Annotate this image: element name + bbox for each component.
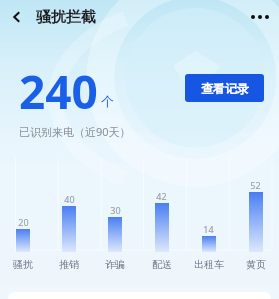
staticText: 已识别来电（近90天） [19, 124, 131, 139]
button[interactable]: 52 [232, 158, 279, 273]
staticText: 个 [101, 93, 114, 109]
staticText: 骚扰拦截 [36, 8, 96, 27]
button[interactable]: 20 [0, 158, 46, 273]
button[interactable]: 42 [138, 158, 185, 273]
staticText: 出租车 [194, 258, 224, 271]
staticText: 20 [18, 216, 29, 228]
button[interactable]: 查看记录 [185, 74, 264, 102]
staticText: 推销 [59, 258, 79, 271]
staticText: 14 [203, 223, 214, 235]
staticText: 配送 [152, 258, 172, 271]
button[interactable]: Back [0, 0, 34, 34]
staticText: 52 [250, 179, 261, 191]
staticText: 诈骗 [105, 258, 125, 271]
button[interactable]: 14 [185, 158, 232, 273]
button[interactable]: 30 [92, 158, 138, 273]
staticText: 40 [64, 193, 75, 205]
button[interactable]: 40 [46, 158, 92, 273]
staticText: 240 [19, 60, 98, 116]
staticText: 查看记录 [201, 81, 249, 96]
staticText: 骚扰 [13, 258, 33, 271]
staticText: 42 [156, 190, 167, 202]
staticText: 黄页 [246, 258, 266, 271]
button[interactable]: More options [241, 0, 279, 34]
staticText: 30 [110, 204, 121, 216]
